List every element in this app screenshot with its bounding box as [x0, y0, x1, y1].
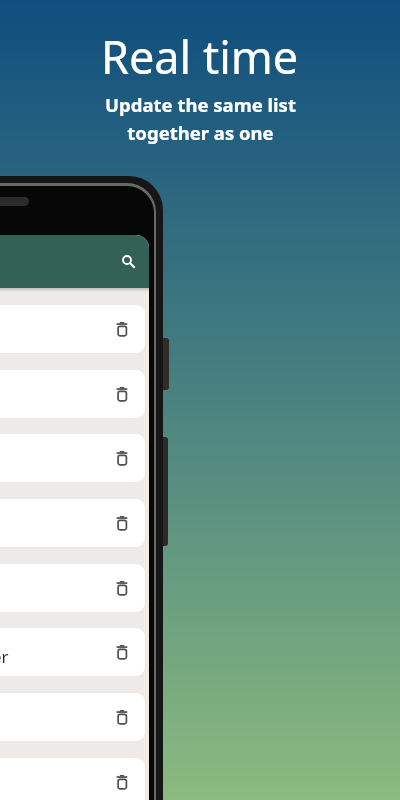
- button[interactable]: [0, 693, 145, 741]
- button[interactable]: [0, 235, 149, 288]
- button[interactable]: [0, 305, 145, 353]
- button[interactable]: [0, 370, 145, 418]
- staticText: Real time: [101, 26, 299, 87]
- button[interactable]: [0, 564, 145, 612]
- staticText: Update the same list together as one: [105, 92, 296, 145]
- button[interactable]: [0, 499, 145, 547]
- staticText: er: [0, 645, 9, 668]
- button[interactable]: er: [0, 628, 145, 676]
- button[interactable]: [0, 434, 145, 482]
- button[interactable]: [0, 758, 145, 800]
